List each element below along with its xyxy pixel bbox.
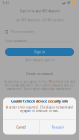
staticText: A server error occurred. Check your netw… [6,105,73,109]
staticText: transferred. Your earlier data is also t… [7,87,72,91]
button[interactable]: Sign in [5,48,74,56]
button[interactable]: Phone number [0,28,79,36]
staticText: try again in a minute or two. [20,109,59,113]
staticText: the privacy statement. Your earlier data… [5,84,74,87]
staticText: 9:41 [2,1,9,5]
button[interactable]: Cancel [3,120,39,134]
staticText: Couldn't check device security info [11,99,68,104]
staticText: Cancel [16,125,26,129]
staticText: Create an account [26,72,53,76]
button[interactable]: Try again [40,120,76,134]
staticText: Sign in to your MS Account [19,9,59,13]
staticText: Sign in [34,50,45,54]
staticText: Enter password [5,39,27,43]
staticText: Try again [51,125,64,129]
staticText: Other ways to sign in [24,58,54,62]
staticText: By signing in you agree to the MS terms … [3,80,75,84]
staticText: Use MS Accounts - all MS services [15,18,63,22]
staticText: Phone number [11,30,34,34]
button[interactable]: Enter password [0,37,79,45]
